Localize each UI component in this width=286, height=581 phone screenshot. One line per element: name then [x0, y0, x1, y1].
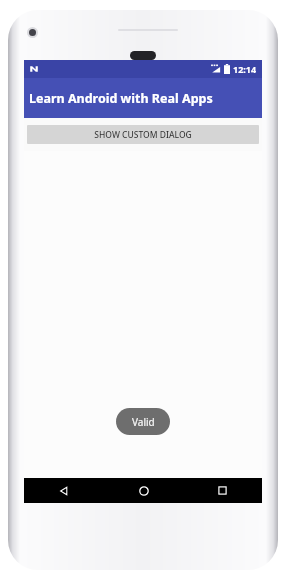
button[interactable]: SHOW CUSTOM DIALOG [27, 125, 259, 144]
button[interactable]: Recent apps [183, 478, 262, 503]
staticText: 12:14 [233, 63, 257, 75]
staticText: Valid [132, 415, 155, 429]
staticText: SHOW CUSTOM DIALOG [94, 129, 192, 141]
staticText: Learn Android with Real Apps [29, 90, 213, 107]
button[interactable]: Home [104, 478, 183, 503]
button[interactable]: Back [24, 478, 104, 503]
